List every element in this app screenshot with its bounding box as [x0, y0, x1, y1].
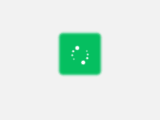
button[interactable]: Loading: [53, 27, 107, 81]
